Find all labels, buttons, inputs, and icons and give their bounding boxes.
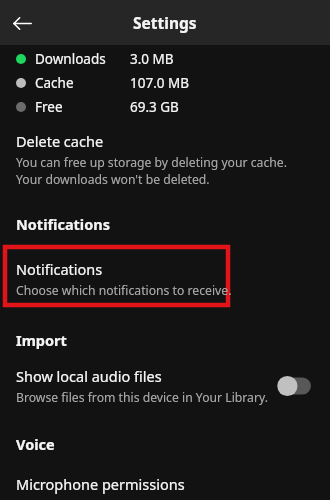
button[interactable]: Show local audio files	[0, 366, 330, 406]
staticText: Notifications	[16, 259, 103, 279]
staticText: 69.3 GB	[130, 98, 179, 116]
staticText: Microphone permissions	[16, 474, 185, 494]
button[interactable]: Notifications	[0, 247, 330, 305]
button[interactable]: Delete cache	[0, 131, 330, 188]
staticText: Downloads	[35, 50, 106, 68]
staticText: Browse files from this device in Your Li…	[16, 389, 268, 406]
staticText: Voice	[16, 434, 55, 454]
staticText: Choose which notifications to receive.	[16, 282, 232, 299]
staticText: 107.0 MB	[130, 74, 190, 92]
button[interactable]: Show local audio files	[276, 375, 314, 397]
staticText: Delete cache	[16, 131, 104, 151]
staticText: Cache	[35, 74, 74, 92]
staticText: Free	[35, 98, 63, 116]
staticText: Show local audio files	[16, 366, 162, 386]
staticText: You can free up storage by deleting your…	[16, 154, 290, 188]
button[interactable]: Microphone permissions	[0, 474, 330, 494]
staticText: Settings	[133, 12, 197, 33]
button[interactable]: Back	[4, 5, 40, 41]
staticText: Notifications	[16, 214, 110, 234]
staticText: Import	[16, 330, 67, 350]
staticText: 3.0 MB	[130, 50, 174, 68]
